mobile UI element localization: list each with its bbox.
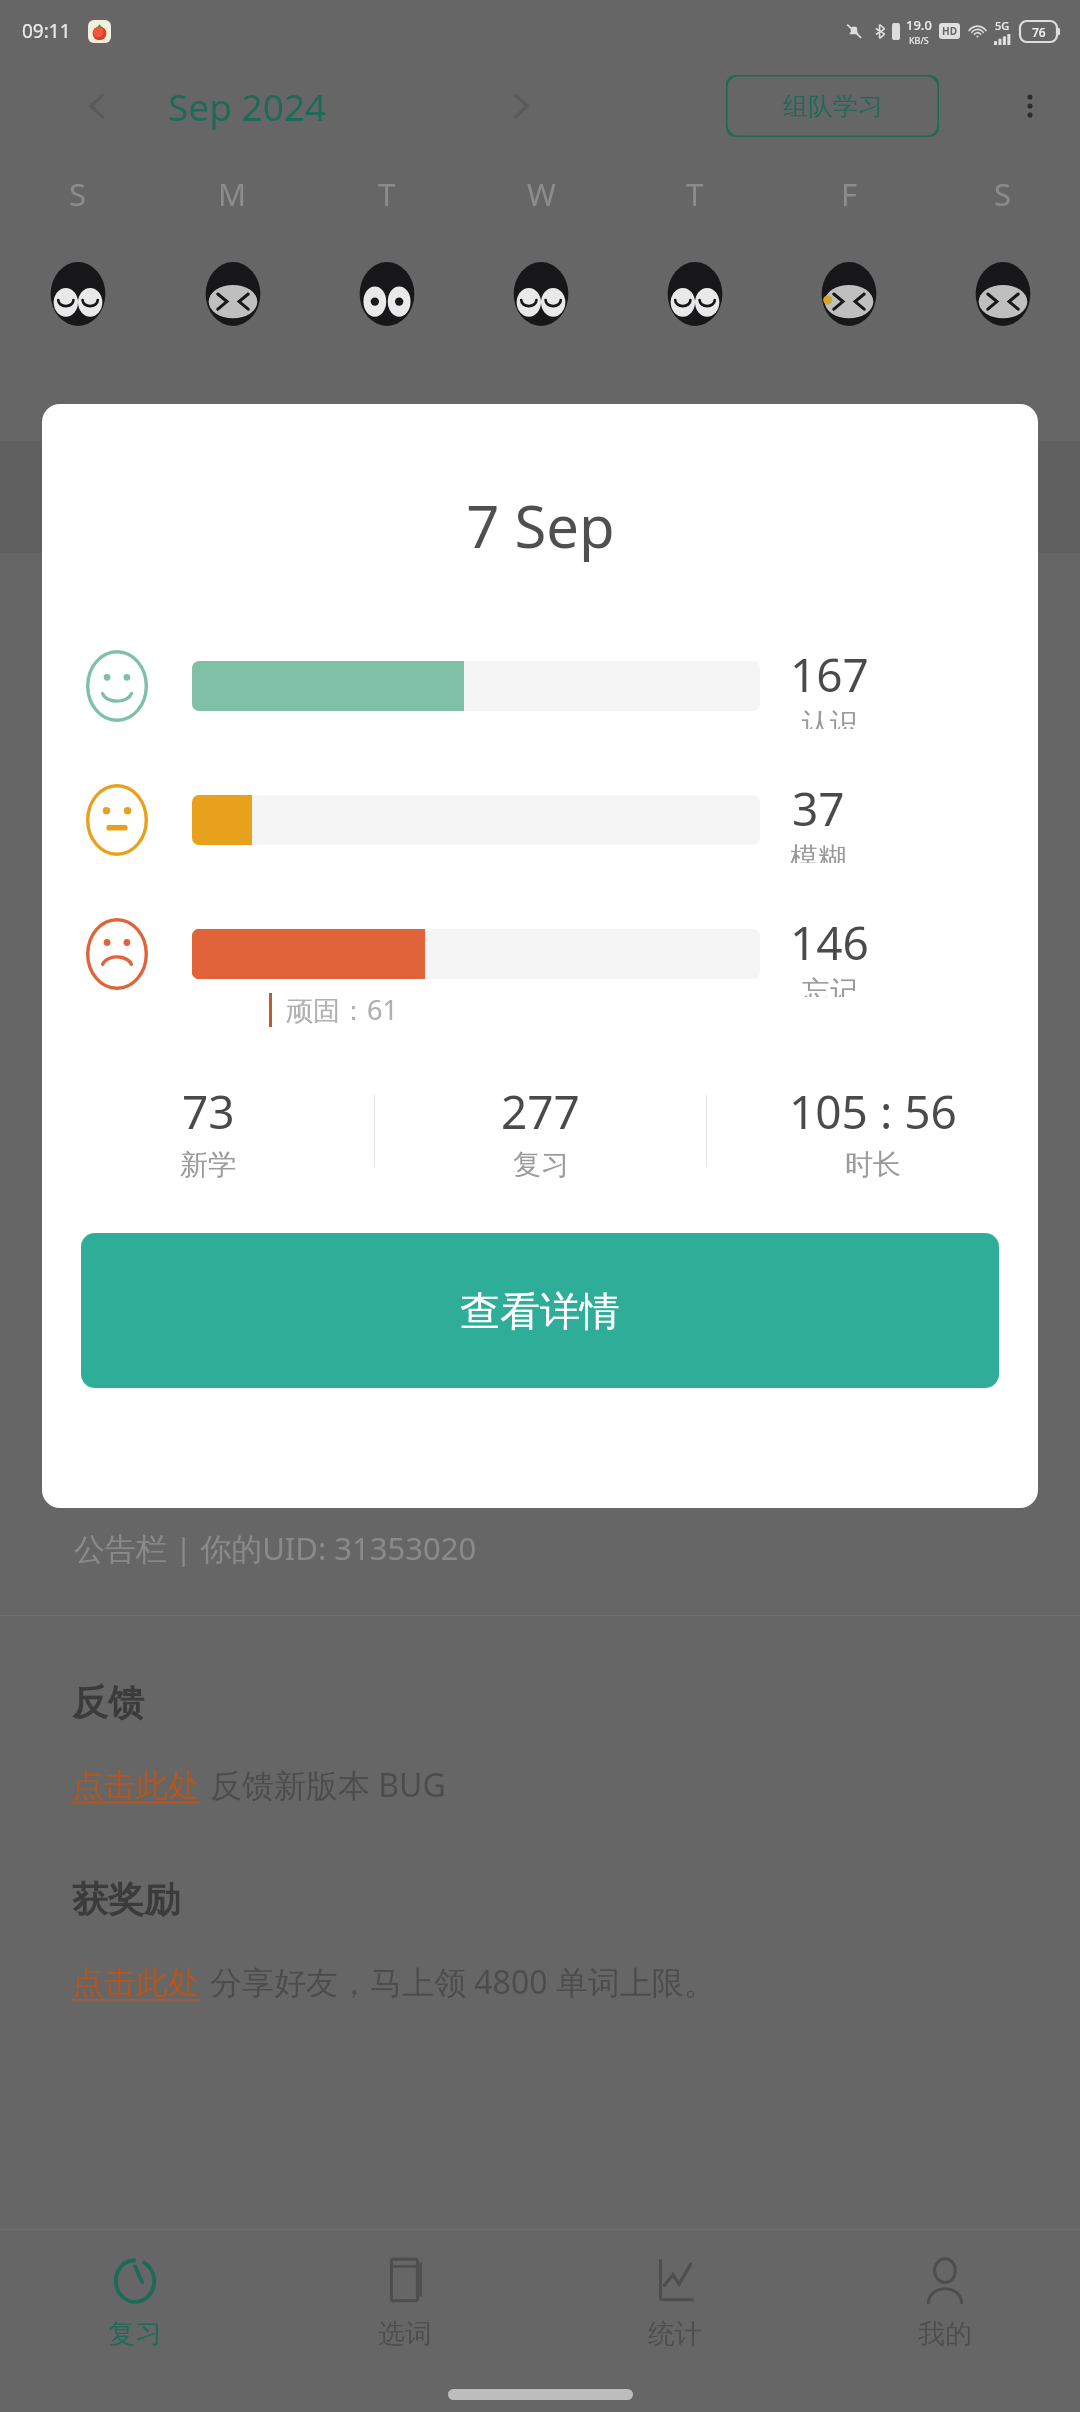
staticText: HD	[942, 24, 957, 38]
staticText: M	[218, 173, 247, 215]
staticText: KB/S	[909, 34, 929, 46]
button[interactable]: 组队学习	[726, 75, 939, 137]
staticText: 模糊	[790, 840, 846, 863]
staticText: 忘记	[802, 974, 858, 997]
button[interactable]: 105 : 56	[707, 1080, 1038, 1182]
button[interactable]: 73	[42, 1080, 374, 1182]
button[interactable]: 点击此处	[72, 1765, 200, 1805]
staticText: 认识	[802, 706, 858, 729]
staticText: W	[527, 173, 556, 215]
button[interactable]: 选词	[270, 2230, 540, 2376]
staticText: 查看详情	[460, 1286, 620, 1336]
staticText: 7 Sep	[466, 486, 615, 565]
staticText: 09:11	[22, 18, 71, 44]
staticText: 277	[501, 1080, 580, 1143]
staticText: 反馈	[72, 1680, 144, 1725]
staticText: 73	[182, 1080, 235, 1143]
staticText: T	[378, 173, 396, 215]
staticText: 167	[790, 643, 869, 706]
staticText: 19.0	[906, 16, 932, 34]
staticText: 我的	[918, 2317, 972, 2351]
staticText: 时长	[845, 1147, 901, 1182]
staticText: 37	[792, 777, 845, 840]
staticText: 146	[790, 911, 869, 974]
staticText: 复习	[108, 2317, 162, 2351]
staticText: 分享好友，马上领 4800 单词上限。	[210, 1960, 716, 2004]
staticText: 获奖励	[72, 1877, 180, 1922]
staticText: 反馈新版本 BUG	[210, 1763, 446, 1807]
staticText: 统计	[648, 2317, 702, 2351]
staticText: S	[69, 173, 87, 215]
staticText: 顽固：61	[286, 991, 398, 1028]
staticText: S	[994, 173, 1012, 215]
button[interactable]: 277	[375, 1080, 706, 1182]
button[interactable]: 查看详情	[81, 1233, 999, 1388]
button[interactable]: 复习	[0, 2230, 270, 2376]
staticText: T	[686, 173, 704, 215]
staticText: 公告栏 | 你的UID: 31353020	[74, 1527, 477, 1569]
staticText: F	[841, 173, 858, 215]
staticText: 5G	[995, 18, 1010, 33]
button[interactable]: Sep 2024	[168, 81, 327, 131]
staticText: 76	[1032, 24, 1046, 40]
button[interactable]: More options	[1002, 78, 1058, 134]
staticText: 选词	[378, 2317, 432, 2351]
button[interactable]: 我的	[810, 2230, 1080, 2376]
staticText: 新学	[180, 1147, 236, 1182]
staticText: 复习	[513, 1147, 569, 1182]
button[interactable]: 点击此处	[72, 1962, 200, 2002]
staticText: 105 : 56	[789, 1080, 957, 1143]
staticText: 组队学习	[783, 91, 883, 122]
